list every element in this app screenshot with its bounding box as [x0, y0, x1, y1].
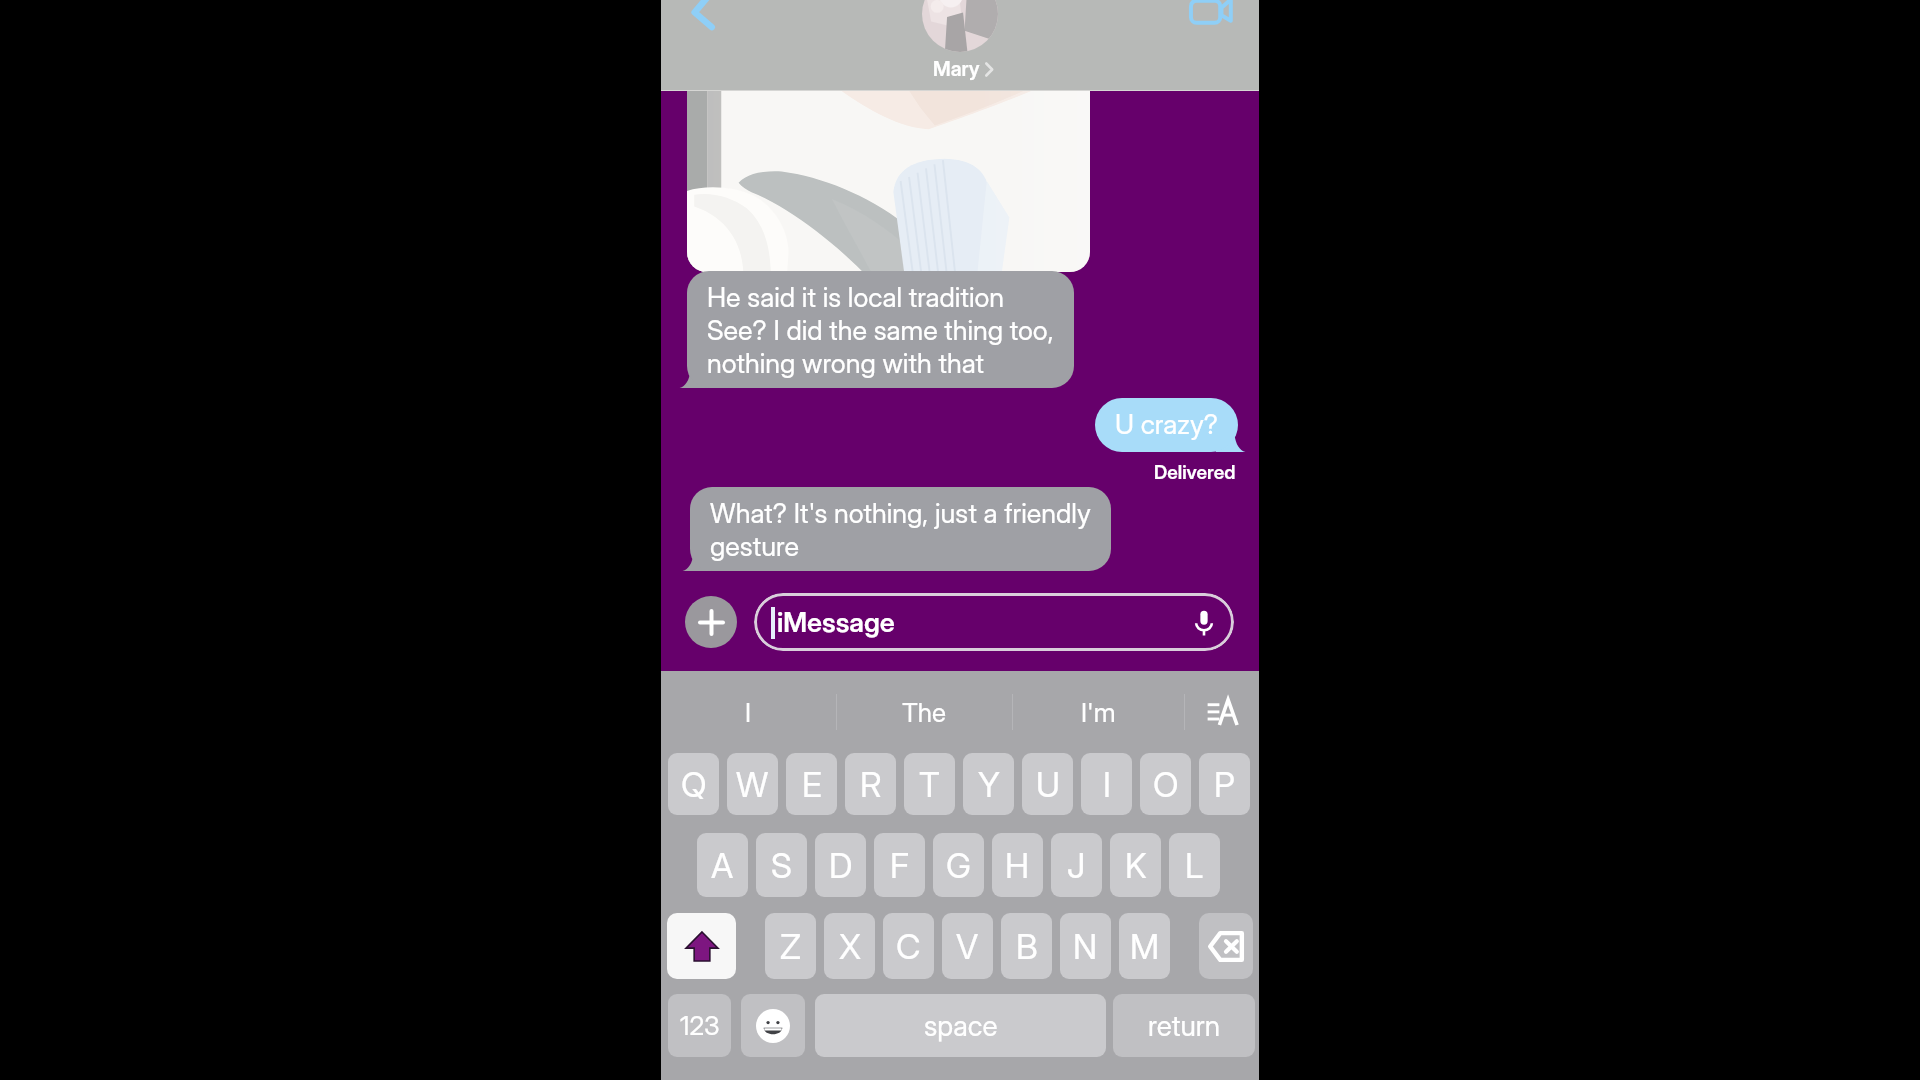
staticText: 123: [680, 1010, 720, 1041]
button[interactable]: A: [697, 833, 748, 897]
button[interactable]: Add attachment: [685, 596, 737, 648]
staticText: R: [860, 764, 882, 805]
staticText: space: [924, 1009, 998, 1043]
button[interactable]: W: [727, 753, 778, 815]
staticText: The: [902, 697, 947, 728]
staticText: N: [1073, 926, 1098, 967]
button[interactable]: Z: [765, 913, 816, 979]
staticText: T: [919, 764, 940, 805]
button[interactable]: Photo attachment: [687, 90, 1090, 272]
button[interactable]: return: [1113, 994, 1255, 1057]
button[interactable]: Q: [668, 753, 719, 815]
button[interactable]: space: [815, 994, 1106, 1057]
staticText: A: [711, 845, 734, 886]
button[interactable]: R: [845, 753, 896, 815]
staticText: X: [839, 926, 861, 967]
button[interactable]: Emoji keyboard: [741, 994, 805, 1057]
button[interactable]: V: [942, 913, 993, 979]
staticText: He said it is local tradition: [707, 281, 1005, 314]
button[interactable]: S: [756, 833, 807, 897]
button[interactable]: N: [1060, 913, 1111, 979]
staticText: B: [1016, 926, 1038, 967]
button[interactable]: Video call: [1184, 0, 1232, 46]
button[interactable]: U crazy?: [1095, 398, 1238, 452]
staticText: H: [1005, 845, 1030, 886]
staticText: F: [890, 845, 909, 886]
button[interactable]: F: [874, 833, 925, 897]
staticText: E: [802, 764, 822, 805]
staticText: W: [736, 764, 769, 805]
staticText: S: [771, 845, 792, 886]
button[interactable]: G: [933, 833, 984, 897]
staticText: iMessage: [777, 606, 895, 639]
staticText: G: [946, 845, 971, 886]
button[interactable]: T: [904, 753, 955, 815]
button[interactable]: The: [837, 671, 1012, 753]
button[interactable]: B: [1001, 913, 1052, 979]
button[interactable]: Back: [681, 0, 725, 28]
button[interactable]: E: [786, 753, 837, 815]
button[interactable]: 123: [668, 994, 731, 1057]
staticText: Mary: [933, 57, 980, 81]
button[interactable]: O: [1140, 753, 1191, 815]
button[interactable]: Mary: [933, 57, 993, 81]
button[interactable]: U: [1022, 753, 1073, 815]
button[interactable]: X: [824, 913, 875, 979]
staticText: Z: [780, 926, 801, 967]
staticText: return: [1148, 1009, 1221, 1043]
button[interactable]: iMessage: [754, 593, 1234, 651]
staticText: C: [896, 926, 921, 967]
button[interactable]: Backspace: [1199, 913, 1253, 979]
staticText: I: [745, 697, 752, 728]
button[interactable]: I: [661, 671, 836, 753]
button[interactable]: M: [1119, 913, 1170, 979]
button[interactable]: L: [1169, 833, 1220, 897]
staticText: U crazy?: [1115, 408, 1218, 441]
staticText: I'm: [1081, 697, 1116, 728]
staticText: Delivered: [1154, 461, 1236, 484]
staticText: Q: [681, 764, 707, 805]
staticText: O: [1153, 764, 1179, 805]
button[interactable]: I'm: [1013, 671, 1184, 753]
button[interactable]: D: [815, 833, 866, 897]
button[interactable]: Text formatting: [1185, 671, 1259, 753]
button[interactable]: K: [1110, 833, 1161, 897]
staticText: Y: [978, 764, 1000, 805]
staticText: What? It's nothing, just a friendly: [710, 497, 1091, 530]
staticText: See? I did the same thing too,: [707, 314, 1054, 347]
staticText: M: [1130, 926, 1160, 967]
staticText: L: [1185, 845, 1204, 886]
staticText: U: [1036, 764, 1060, 805]
button[interactable]: Shift: [667, 913, 736, 979]
staticText: gesture: [710, 530, 799, 563]
staticText: I: [1103, 764, 1111, 805]
button[interactable]: Mary profile photo: [922, 0, 998, 52]
button[interactable]: H: [992, 833, 1043, 897]
button[interactable]: He said it is local tradition: [687, 271, 1074, 388]
staticText: K: [1125, 845, 1147, 886]
button[interactable]: What? It's nothing, just a friendly: [690, 487, 1111, 571]
button[interactable]: Y: [963, 753, 1014, 815]
staticText: J: [1067, 845, 1086, 886]
staticText: nothing wrong with that: [707, 347, 985, 380]
button[interactable]: I: [1081, 753, 1132, 815]
button[interactable]: P: [1199, 753, 1250, 815]
staticText: V: [956, 926, 979, 967]
button[interactable]: C: [883, 913, 934, 979]
staticText: D: [829, 845, 853, 886]
button[interactable]: J: [1051, 833, 1102, 897]
staticText: P: [1214, 764, 1235, 805]
